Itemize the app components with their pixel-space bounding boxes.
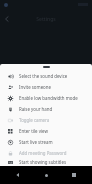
- staticText: Start live stream: [19, 139, 53, 145]
- button[interactable]: Start showing subtitles: [0, 158, 92, 166]
- staticText: Raise your hand: [19, 106, 53, 112]
- button[interactable]: Select the sound device: [0, 70, 92, 81]
- staticText: Start showing subtitles: [19, 159, 67, 165]
- button[interactable]: Add meeting Password: [0, 147, 92, 158]
- staticText: Invite someone: [19, 84, 51, 90]
- staticText: Settings: [36, 16, 56, 23]
- button[interactable]: Home: [36, 166, 56, 184]
- button[interactable]: Back: [8, 166, 28, 184]
- staticText: Select the sound device: [19, 73, 68, 79]
- button[interactable]: Recent apps: [64, 166, 84, 184]
- button[interactable]: Enable low bandwidth mode: [0, 92, 92, 103]
- staticText: Enable low bandwidth mode: [19, 95, 78, 101]
- button[interactable]: Invite someone: [0, 81, 92, 92]
- button[interactable]: Back: [0, 12, 14, 26]
- button[interactable]: Raise your hand: [0, 103, 92, 114]
- staticText: Toggle camera: [19, 117, 50, 123]
- button[interactable]: Start live stream: [0, 136, 92, 147]
- staticText: Add meeting Password: [19, 150, 67, 156]
- button[interactable]: Enter tile view: [0, 125, 92, 136]
- staticText: Enter tile view: [19, 128, 48, 134]
- button[interactable]: Toggle camera: [0, 114, 92, 125]
